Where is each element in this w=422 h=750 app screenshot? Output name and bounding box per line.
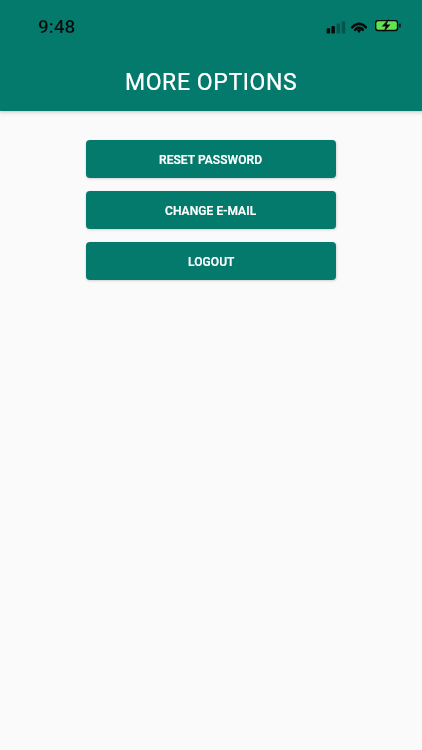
- staticText: RESET PASSWORD: [159, 153, 263, 167]
- button[interactable]: CHANGE E-MAIL: [86, 191, 336, 229]
- other: Wi-Fi connected: [350, 18, 368, 33]
- staticText: MORE OPTIONS: [125, 69, 298, 96]
- staticText: CHANGE E-MAIL: [165, 204, 257, 218]
- button[interactable]: LOGOUT: [86, 242, 336, 280]
- other: Battery charging: [375, 20, 401, 32]
- button[interactable]: RESET PASSWORD: [86, 140, 336, 178]
- staticText: LOGOUT: [188, 255, 235, 269]
- other: Mobile signal strength: [326, 19, 346, 34]
- staticText: 9:48: [38, 15, 76, 37]
